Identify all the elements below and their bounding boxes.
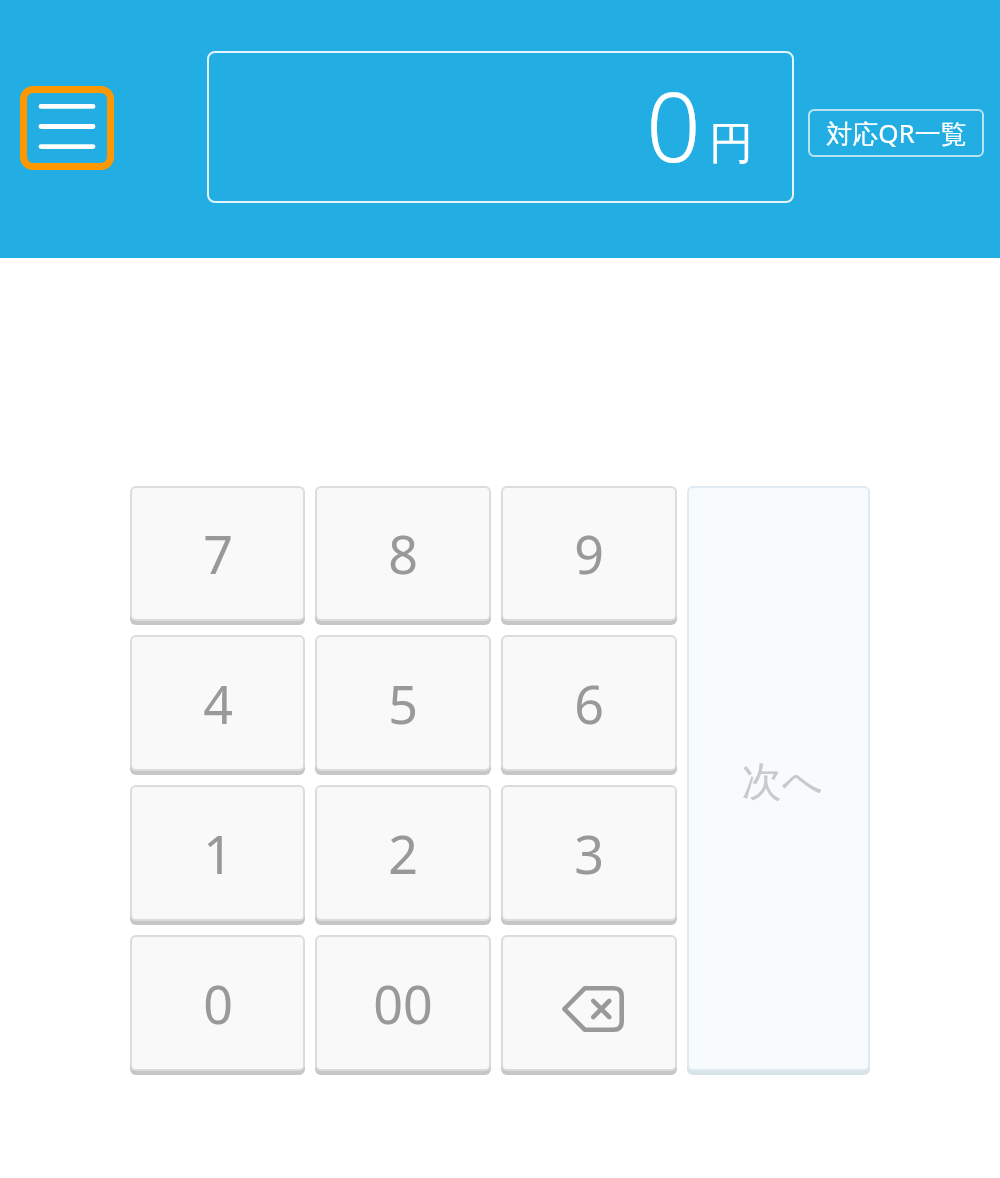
staticText: 5	[388, 668, 418, 739]
staticText: 6	[574, 668, 604, 739]
button[interactable]: 0	[130, 935, 305, 1075]
button[interactable]: 9	[501, 486, 677, 625]
staticText: 1	[203, 818, 233, 889]
button[interactable]: 5	[315, 635, 491, 775]
button[interactable]: 2	[315, 785, 491, 925]
staticText: 0	[646, 59, 701, 190]
staticText: 4	[203, 668, 233, 739]
button[interactable]: 7	[130, 486, 305, 625]
staticText: 9	[574, 518, 604, 589]
button[interactable]: 6	[501, 635, 677, 775]
staticText: 7	[203, 518, 233, 589]
staticText: 8	[388, 518, 418, 589]
button[interactable]: Menu	[20, 86, 114, 170]
button[interactable]: 対応QR一覧	[808, 109, 984, 157]
staticText: 次へ	[742, 756, 823, 806]
button[interactable]: Backspace	[501, 935, 677, 1075]
button[interactable]: 次へ	[687, 486, 870, 1075]
button[interactable]: 00	[315, 935, 491, 1075]
staticText: 00	[373, 968, 433, 1039]
staticText: 2	[388, 818, 418, 889]
button[interactable]: 3	[501, 785, 677, 925]
staticText: 円	[709, 116, 753, 171]
button[interactable]: 4	[130, 635, 305, 775]
staticText: 対応QR一覧	[826, 115, 967, 151]
button[interactable]: 0	[207, 51, 794, 203]
staticText: 3	[574, 818, 604, 889]
button[interactable]: 8	[315, 486, 491, 625]
staticText: 0	[203, 968, 233, 1039]
button[interactable]: 1	[130, 785, 305, 925]
